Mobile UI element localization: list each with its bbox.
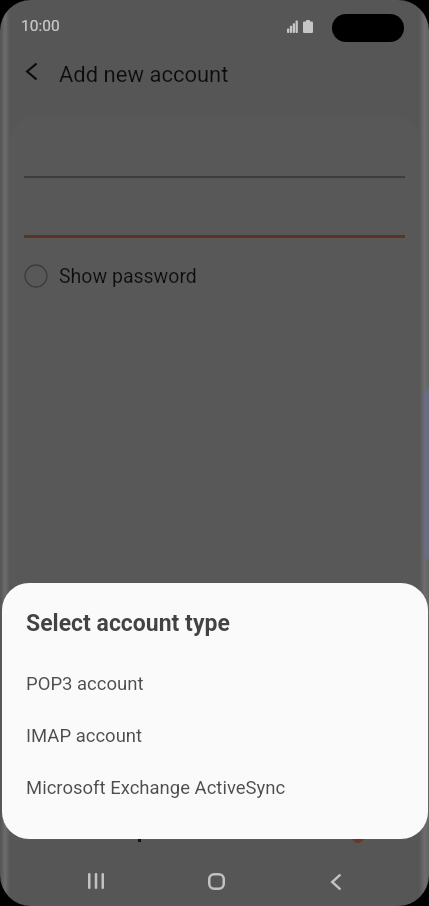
staticText: Show password [59, 265, 197, 288]
staticText: Select account type [26, 610, 230, 637]
staticText: 10:00 [21, 17, 60, 35]
button[interactable]: Recent apps [72, 857, 120, 905]
button[interactable]: IMAP account [2, 714, 428, 758]
staticText: IMAP account [26, 725, 143, 747]
button[interactable]: Microsoft Exchange ActiveSync [2, 766, 428, 810]
button[interactable]: POP3 account [2, 662, 428, 706]
button[interactable]: Back [312, 858, 360, 906]
staticText: Add new account [59, 62, 229, 88]
button[interactable]: Home [192, 857, 240, 905]
staticText: POP3 account [26, 673, 144, 695]
staticText: Microsoft Exchange ActiveSync [26, 777, 286, 799]
button[interactable]: Navigate up [11, 51, 51, 91]
button[interactable]: Show password [24, 258, 197, 294]
